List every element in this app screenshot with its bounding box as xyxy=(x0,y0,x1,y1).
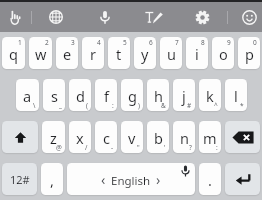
button[interactable]: w xyxy=(29,37,52,69)
staticText: s xyxy=(51,86,58,106)
staticText: / xyxy=(85,143,88,152)
button[interactable]: Backspace xyxy=(225,121,260,153)
button[interactable]: y xyxy=(134,37,156,69)
staticText: 5 xyxy=(123,38,127,47)
staticText: English xyxy=(111,173,151,189)
staticText: & xyxy=(161,101,166,110)
staticText: g xyxy=(128,86,137,106)
button[interactable]: j xyxy=(173,79,195,111)
staticText: ‹ xyxy=(101,170,106,189)
button[interactable]: d xyxy=(69,79,91,111)
button[interactable]: Settings xyxy=(178,2,227,32)
staticText: : xyxy=(216,143,218,152)
button[interactable]: c xyxy=(95,121,117,153)
staticText: - xyxy=(111,143,114,152)
staticText: a xyxy=(23,86,32,106)
staticText: k xyxy=(206,86,214,106)
staticText: 1 xyxy=(18,38,22,47)
button[interactable]: o xyxy=(212,37,234,69)
staticText: , xyxy=(50,170,54,190)
staticText: . xyxy=(208,170,212,190)
staticText: p xyxy=(245,44,254,64)
button[interactable]: g xyxy=(121,79,143,111)
button[interactable]: i xyxy=(186,37,208,69)
button[interactable]: e xyxy=(56,37,78,69)
button[interactable]: v xyxy=(121,121,143,153)
staticText: ' xyxy=(164,143,166,152)
staticText: ? xyxy=(189,143,192,152)
staticText: 7 xyxy=(175,38,179,47)
staticText: ( xyxy=(86,101,88,110)
button[interactable]: l xyxy=(225,79,247,111)
staticText: 4 xyxy=(97,38,101,47)
staticText: v xyxy=(128,128,136,148)
button[interactable]: t xyxy=(108,37,130,69)
button[interactable]: , xyxy=(41,163,63,195)
button[interactable]: 12# xyxy=(2,163,37,195)
button[interactable]: p xyxy=(238,37,260,69)
button[interactable]: ‹ xyxy=(67,163,195,195)
staticText: t xyxy=(116,44,122,64)
staticText: x xyxy=(76,128,84,148)
button[interactable]: u xyxy=(160,37,182,69)
staticText: e xyxy=(63,44,72,64)
staticText: 6 xyxy=(149,38,153,47)
staticText: " xyxy=(137,143,140,152)
button[interactable]: h xyxy=(147,79,169,111)
button[interactable]: x xyxy=(69,121,91,153)
staticText: y xyxy=(141,44,149,64)
staticText: o xyxy=(219,44,228,64)
staticText: w xyxy=(35,44,47,64)
button[interactable]: Text editing xyxy=(0,2,31,32)
staticText: @ xyxy=(56,143,62,152)
button[interactable]: Voice input xyxy=(80,2,129,32)
button[interactable]: Shift xyxy=(2,121,38,153)
button[interactable]: s xyxy=(43,79,65,111)
staticText: r xyxy=(90,44,96,64)
staticText: d xyxy=(76,86,85,106)
staticText: 2 xyxy=(45,38,49,47)
staticText: c xyxy=(103,128,110,148)
staticText: \ xyxy=(33,101,36,110)
button[interactable]: a xyxy=(16,79,39,111)
staticText: l xyxy=(234,86,238,106)
button[interactable]: Enter xyxy=(225,163,260,195)
staticText: 9 xyxy=(227,38,231,47)
button[interactable]: Language xyxy=(32,2,80,32)
button[interactable]: n xyxy=(173,121,195,153)
staticText: i xyxy=(195,44,199,64)
staticText: h xyxy=(154,86,163,106)
button[interactable]: q xyxy=(2,37,25,69)
staticText: j xyxy=(182,86,186,106)
button[interactable]: b xyxy=(147,121,169,153)
staticText: # xyxy=(187,101,192,110)
staticText: u xyxy=(167,44,176,64)
button[interactable]: Emoji xyxy=(228,2,262,32)
staticText: _ xyxy=(59,101,62,110)
button[interactable]: k xyxy=(199,79,221,111)
button[interactable]: f xyxy=(95,79,117,111)
staticText: 0 xyxy=(253,38,257,47)
staticText: q xyxy=(9,44,18,64)
button[interactable]: Handwriting xyxy=(129,2,178,32)
staticText: ^ xyxy=(214,101,218,110)
staticText: › xyxy=(156,170,161,189)
staticText: ) xyxy=(138,101,140,110)
staticText: b xyxy=(154,128,163,148)
staticText: n xyxy=(180,128,189,148)
button[interactable]: . xyxy=(199,163,221,195)
staticText: 3 xyxy=(71,38,75,47)
staticText: : xyxy=(112,101,114,110)
button[interactable]: r xyxy=(82,37,104,69)
button[interactable]: z xyxy=(42,121,65,153)
staticText: * xyxy=(240,101,244,110)
staticText: f xyxy=(104,86,109,106)
staticText: 8 xyxy=(201,38,205,47)
staticText: z xyxy=(50,128,57,148)
button[interactable]: m xyxy=(199,121,221,153)
staticText: 12# xyxy=(10,172,30,187)
staticText: m xyxy=(203,128,217,148)
